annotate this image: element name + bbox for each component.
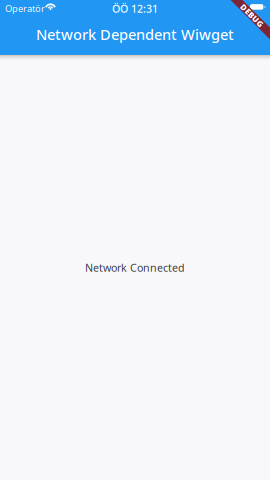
staticText: Network Connected [85, 260, 185, 275]
staticText: Network Dependent Wiwget [36, 24, 234, 44]
staticText: Operatör [5, 2, 45, 15]
staticText: DEBUG [237, 10, 266, 21]
staticText: ÖÖ 12:31 [112, 1, 158, 16]
